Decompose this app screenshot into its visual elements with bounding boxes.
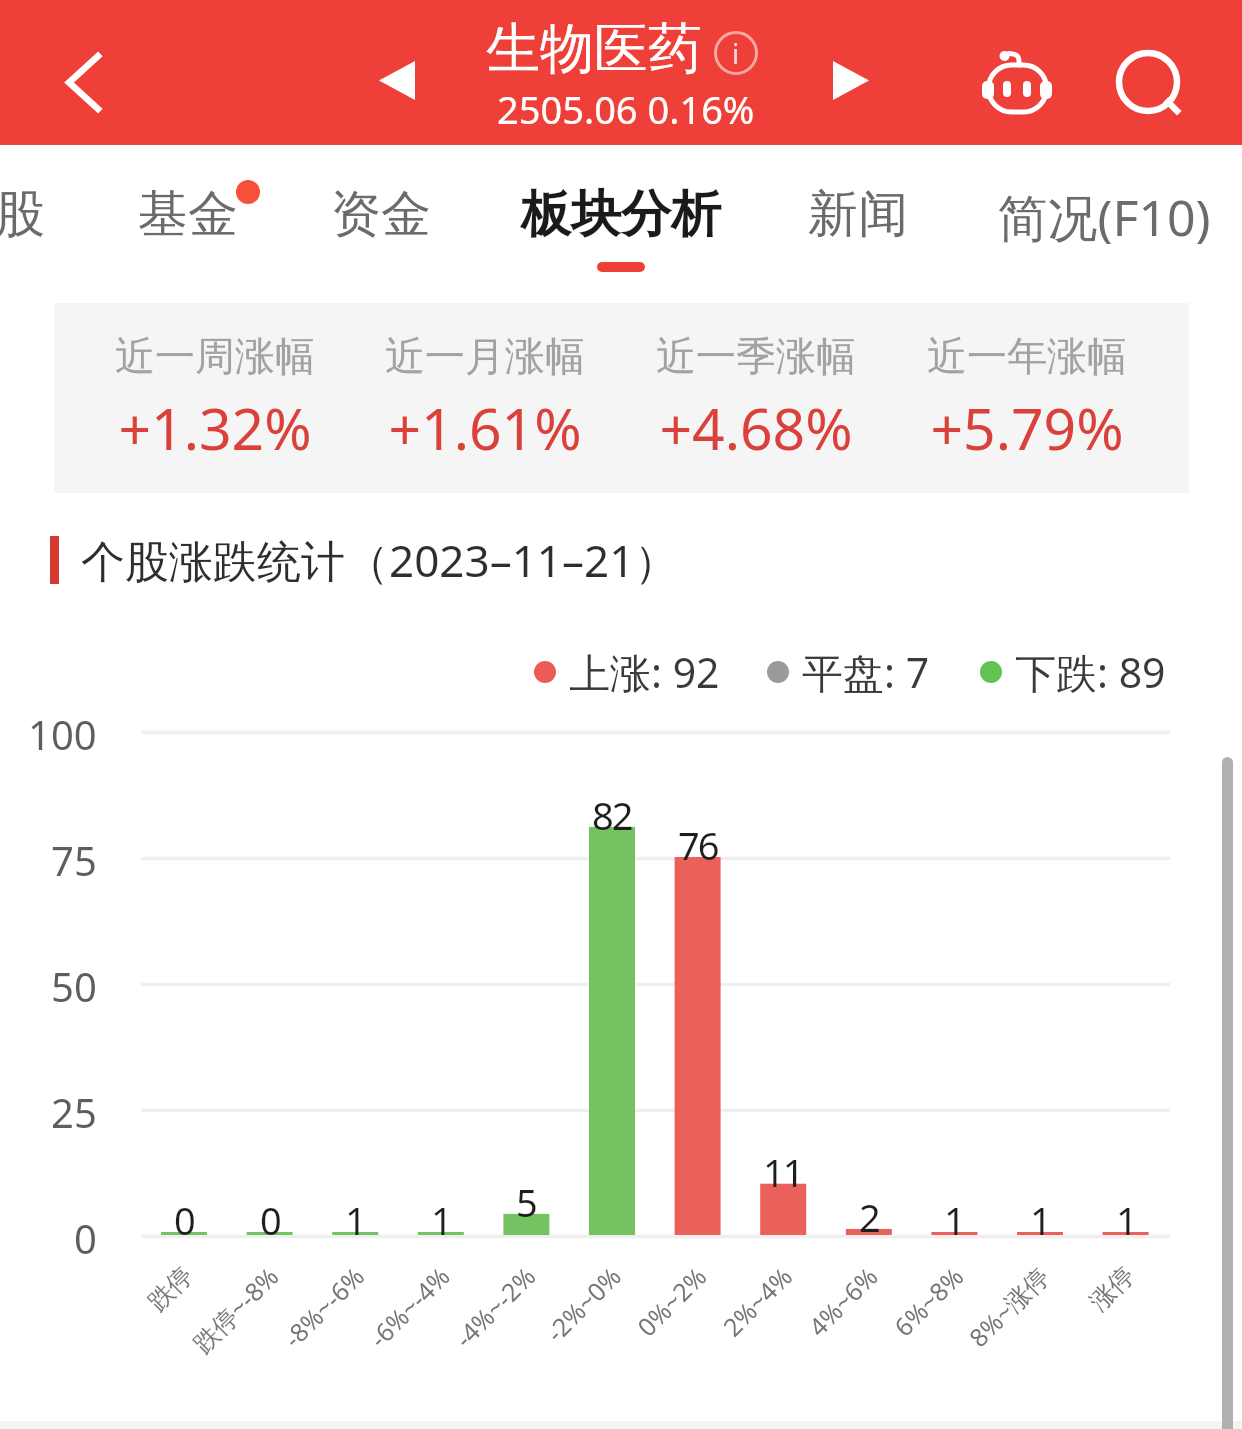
staticText: 75 bbox=[51, 833, 97, 887]
staticText: 股 bbox=[0, 183, 45, 246]
staticText: 1 bbox=[1116, 1194, 1136, 1246]
staticText: 近一周涨幅 bbox=[85, 331, 345, 381]
staticText: 76 bbox=[678, 819, 718, 871]
button[interactable]: 平盘: 7 bbox=[767, 644, 930, 700]
button[interactable]: AI assistant bbox=[947, 13, 1087, 153]
staticText: 25 bbox=[51, 1085, 97, 1139]
staticText: 100 bbox=[28, 707, 97, 761]
staticText: i bbox=[732, 34, 740, 72]
staticText: 0 bbox=[74, 1211, 97, 1265]
button[interactable]: 简况(F10) bbox=[922, 145, 1242, 303]
staticText: 基金 bbox=[138, 183, 238, 246]
staticText: 0 bbox=[260, 1194, 280, 1246]
staticText: +1.32% bbox=[85, 389, 345, 467]
staticText: 1 bbox=[1030, 1194, 1050, 1246]
button[interactable]: 股 bbox=[0, 145, 46, 303]
staticText: 近一季涨幅 bbox=[626, 331, 886, 381]
staticText: 50 bbox=[51, 959, 97, 1013]
staticText: 82 bbox=[592, 789, 632, 841]
staticText: 2505.06 0.16% bbox=[497, 83, 755, 135]
button[interactable]: 近一季涨幅 bbox=[626, 331, 886, 467]
staticText: 近一年涨幅 bbox=[897, 331, 1157, 381]
button[interactable]: Search bbox=[1081, 15, 1191, 125]
staticText: 1 bbox=[345, 1194, 365, 1246]
staticText: +5.79% bbox=[897, 389, 1157, 467]
button[interactable]: Previous sector bbox=[352, 35, 442, 125]
button[interactable]: 近一年涨幅 bbox=[897, 331, 1157, 467]
button[interactable]: 新闻 bbox=[806, 145, 910, 303]
staticText: 5 bbox=[516, 1176, 536, 1228]
button[interactable]: 板块分析 bbox=[511, 145, 731, 303]
button[interactable]: Next sector bbox=[806, 35, 896, 125]
staticText: 上涨: 92 bbox=[569, 644, 720, 700]
button[interactable]: 基金 bbox=[136, 145, 240, 303]
staticText: 0 bbox=[174, 1194, 194, 1246]
button[interactable]: 近一月涨幅 bbox=[355, 331, 615, 467]
staticText: 新闻 bbox=[808, 183, 908, 246]
button[interactable]: 上涨: 92 bbox=[534, 644, 720, 700]
staticText: 下跌: 89 bbox=[1015, 644, 1166, 700]
staticText: 2 bbox=[859, 1191, 879, 1243]
staticText: 1 bbox=[944, 1194, 964, 1246]
staticText: +4.68% bbox=[626, 389, 886, 467]
staticText: 个股涨跌统计（2023–11–21） bbox=[81, 530, 679, 590]
button[interactable]: 资金 bbox=[329, 145, 433, 303]
staticText: +1.61% bbox=[355, 389, 615, 467]
staticText: 生物医药 bbox=[486, 15, 702, 83]
staticText: 11 bbox=[763, 1146, 803, 1198]
button[interactable]: 下跌: 89 bbox=[980, 644, 1166, 700]
staticText: 简况(F10) bbox=[997, 183, 1211, 251]
button[interactable]: Back bbox=[28, 27, 138, 137]
button[interactable]: 近一周涨幅 bbox=[85, 331, 345, 467]
staticText: 板块分析 bbox=[521, 183, 721, 246]
staticText: 资金 bbox=[331, 183, 431, 246]
staticText: 近一月涨幅 bbox=[355, 331, 615, 381]
staticText: 平盘: 7 bbox=[802, 644, 930, 700]
staticText: 1 bbox=[431, 1194, 451, 1246]
